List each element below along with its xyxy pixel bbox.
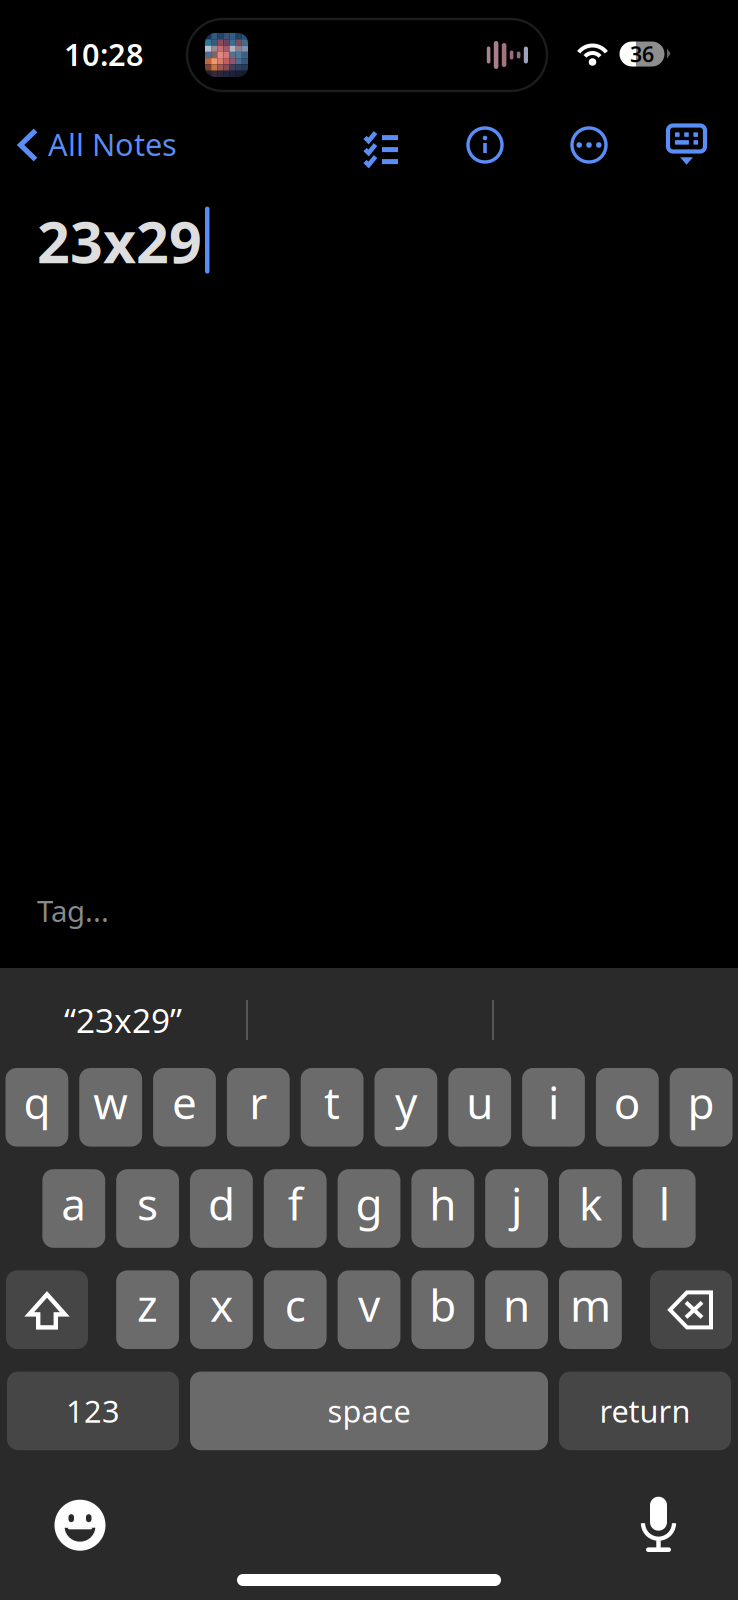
- button[interactable]: p: [670, 1068, 732, 1147]
- staticText: j: [511, 1174, 522, 1233]
- staticText: g: [355, 1174, 382, 1233]
- button[interactable]: w: [79, 1068, 142, 1147]
- button[interactable]: j: [485, 1169, 548, 1248]
- button[interactable]: d: [190, 1169, 253, 1248]
- button[interactable]: “23x29”: [0, 989, 246, 1051]
- staticText: i: [548, 1073, 559, 1131]
- staticText: 23x29: [37, 203, 202, 279]
- staticText: e: [172, 1073, 197, 1131]
- staticText: l: [659, 1174, 670, 1233]
- staticText: space: [327, 1390, 410, 1431]
- button[interactable]: r: [227, 1068, 290, 1147]
- button[interactable]: k: [559, 1169, 622, 1248]
- button[interactable]: x: [190, 1270, 253, 1349]
- button[interactable]: c: [264, 1270, 327, 1349]
- button[interactable]: o: [596, 1068, 659, 1147]
- button[interactable]: More: [570, 126, 608, 164]
- button[interactable]: y: [374, 1068, 437, 1147]
- staticText: h: [429, 1174, 456, 1233]
- button[interactable]: Info: [466, 126, 504, 164]
- button[interactable]: q: [5, 1068, 68, 1147]
- button[interactable]: f: [264, 1169, 327, 1248]
- staticText: 36: [630, 40, 654, 68]
- button[interactable]: v: [338, 1270, 400, 1349]
- staticText: t: [324, 1073, 340, 1131]
- staticText: o: [614, 1073, 641, 1131]
- button[interactable]: s: [116, 1169, 179, 1248]
- button[interactable]: z: [116, 1270, 179, 1349]
- button[interactable]: t: [301, 1068, 363, 1147]
- button[interactable]: Checklist: [363, 130, 400, 160]
- staticText: p: [688, 1073, 715, 1131]
- button[interactable]: b: [411, 1270, 474, 1349]
- button[interactable]: Dictation: [641, 1490, 676, 1548]
- staticText: w: [93, 1073, 128, 1131]
- staticText: s: [137, 1174, 158, 1233]
- button[interactable]: Emoji: [53, 1492, 107, 1546]
- button[interactable]: All Notes: [0, 116, 177, 174]
- button[interactable]: a: [42, 1169, 105, 1248]
- staticText: 123: [66, 1390, 120, 1431]
- button[interactable]: return: [559, 1372, 731, 1450]
- staticText: z: [137, 1275, 158, 1334]
- staticText: n: [503, 1275, 530, 1334]
- button[interactable]: Delete: [650, 1270, 732, 1349]
- button[interactable]: u: [448, 1068, 511, 1147]
- button[interactable]: n: [485, 1270, 548, 1349]
- button[interactable]: l: [633, 1169, 696, 1248]
- staticText: r: [249, 1073, 267, 1131]
- button[interactable]: i: [522, 1068, 585, 1147]
- staticText: q: [23, 1073, 50, 1131]
- staticText: y: [395, 1073, 417, 1131]
- staticText: u: [466, 1073, 493, 1131]
- staticText: d: [208, 1174, 235, 1233]
- button[interactable]: m: [559, 1270, 622, 1349]
- staticText: return: [599, 1390, 690, 1431]
- staticText: Tag...: [37, 891, 109, 930]
- staticText: f: [288, 1174, 303, 1233]
- button[interactable]: Shift: [6, 1270, 88, 1349]
- button[interactable]: e: [153, 1068, 216, 1147]
- staticText: k: [579, 1174, 602, 1233]
- button[interactable]: h: [411, 1169, 474, 1248]
- button[interactable]: space: [190, 1372, 548, 1450]
- button[interactable]: g: [338, 1169, 400, 1248]
- staticText: m: [570, 1275, 611, 1334]
- staticText: v: [358, 1275, 380, 1334]
- staticText: All Notes: [48, 124, 177, 164]
- staticText: 10:28: [64, 34, 144, 74]
- staticText: “23x29”: [64, 998, 182, 1042]
- button[interactable]: 123: [7, 1372, 179, 1450]
- button[interactable]: Hide Keyboard: [666, 123, 707, 167]
- staticText: b: [429, 1275, 456, 1334]
- staticText: x: [210, 1275, 233, 1334]
- staticText: c: [285, 1275, 306, 1334]
- staticText: a: [61, 1174, 86, 1233]
